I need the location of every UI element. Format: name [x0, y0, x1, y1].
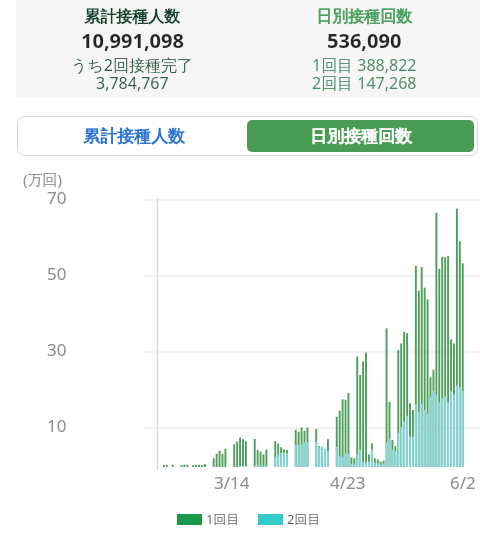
staticText: 2回目 [287, 510, 321, 528]
staticText: 70 [47, 186, 67, 209]
staticText: 3/14 [214, 471, 250, 494]
staticText: 10,991,098 [81, 27, 184, 54]
staticText: 536,090 [327, 27, 402, 54]
staticText: (万回) [23, 169, 63, 189]
button[interactable]: 日別接種回数 [247, 120, 474, 152]
staticText: 日別接種回数 [310, 126, 412, 147]
staticText: 累計接種人数 [83, 126, 185, 147]
staticText: 4/23 [330, 471, 366, 494]
staticText: 30 [47, 338, 67, 361]
staticText: 日別接種回数 [316, 7, 412, 27]
staticText: 1回目 [206, 510, 240, 528]
staticText: 1回目 388,822 [312, 54, 417, 76]
staticText: 2回目 147,268 [312, 72, 417, 94]
staticText: 累計接種人数 [84, 7, 180, 27]
staticText: 6/2 [450, 471, 476, 494]
button[interactable]: 累計接種人数 [21, 120, 247, 152]
staticText: うち2回接種完了 [71, 54, 193, 76]
staticText: 3,784,767 [96, 72, 169, 94]
staticText: 50 [47, 262, 67, 285]
staticText: 10 [47, 414, 67, 437]
